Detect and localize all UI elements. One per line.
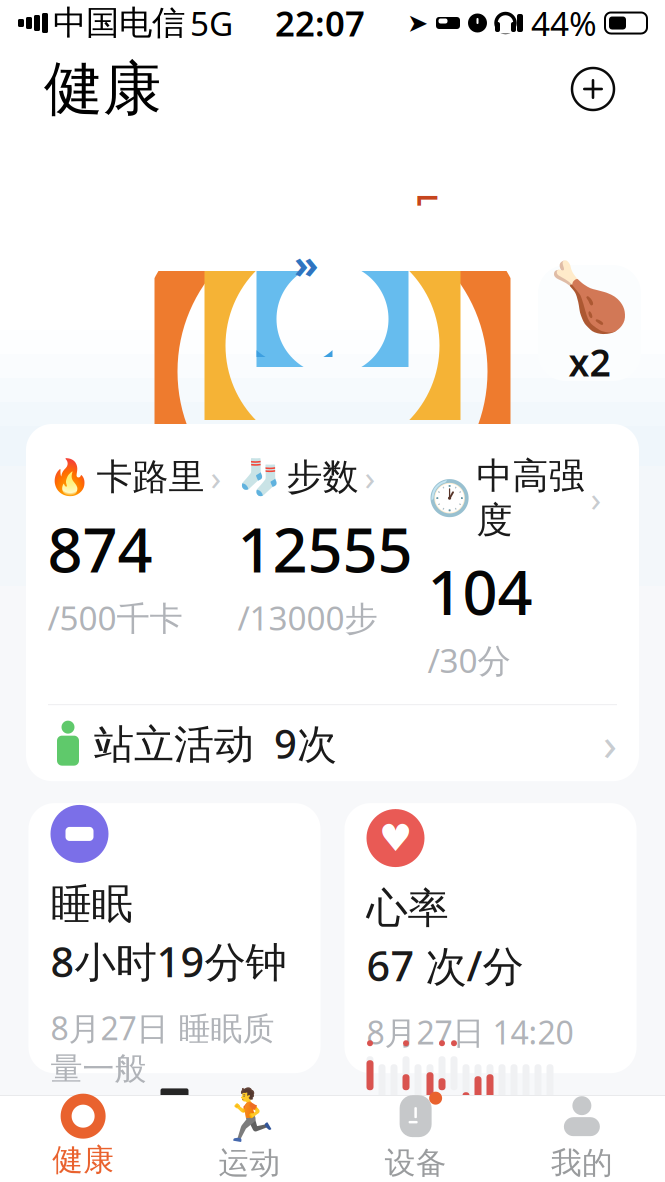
staticText: 67 次/分	[366, 938, 523, 993]
staticText: ⌐	[414, 181, 441, 217]
staticText: 44%	[531, 1, 597, 45]
staticText: ›	[603, 713, 617, 773]
staticText: ›	[364, 454, 375, 500]
button[interactable]: 设备	[332, 1096, 499, 1182]
staticText: 站立活动 9次	[94, 717, 337, 770]
staticText: 8月27日 睡眠质量一般	[50, 1007, 274, 1088]
button[interactable]: 我的	[499, 1096, 665, 1182]
staticText: 🕐	[427, 478, 470, 518]
staticText: 中国电信	[53, 2, 185, 43]
button[interactable]: 健康	[0, 1096, 166, 1182]
staticText: 我的	[551, 1144, 613, 1182]
staticText: 22:07	[275, 0, 365, 46]
staticText: 健康	[52, 1141, 114, 1179]
staticText: 🍗	[548, 259, 631, 335]
staticText: 🔥	[47, 457, 90, 497]
staticText: ♥	[379, 817, 412, 859]
staticText: /13000步	[237, 595, 377, 640]
staticText: 步数	[286, 455, 358, 499]
button[interactable]: 🧦	[237, 454, 427, 640]
staticText: 卡路里	[96, 455, 204, 499]
staticText: 中高强度	[476, 454, 584, 542]
staticText: ›	[210, 454, 221, 500]
staticText: 🧦	[237, 457, 280, 497]
staticText: x2	[568, 337, 610, 387]
staticText: 874	[47, 508, 152, 589]
button[interactable]: 站立活动 9次	[26, 705, 639, 781]
button[interactable]: 🕐	[427, 454, 617, 682]
button[interactable]: ♥	[344, 803, 636, 1073]
staticText: 运动	[218, 1144, 280, 1182]
staticText: 8月27日 14:20	[366, 1011, 573, 1053]
staticText: ➤	[407, 9, 428, 37]
staticText: 设备	[385, 1144, 447, 1182]
staticText: 心率	[366, 883, 448, 934]
staticText: 104	[427, 550, 532, 632]
button[interactable]: 睡眠	[28, 803, 320, 1073]
staticText: /500千卡	[47, 595, 182, 640]
staticText: ›	[590, 475, 601, 521]
button[interactable]: 添加	[565, 61, 621, 117]
staticText: /30分	[427, 638, 510, 682]
staticText: 12555	[237, 508, 412, 589]
staticText: »	[294, 236, 319, 289]
staticText: 5G	[190, 1, 233, 45]
button[interactable]: 🔥	[47, 454, 237, 640]
button[interactable]: 奖励 x2	[538, 265, 641, 381]
button[interactable]: 🏃	[166, 1096, 332, 1182]
staticText: 健康	[44, 53, 162, 125]
staticText: 8小时19分钟	[50, 934, 286, 989]
staticText: 睡眠	[50, 879, 132, 930]
staticText: 🏃	[218, 1087, 281, 1145]
